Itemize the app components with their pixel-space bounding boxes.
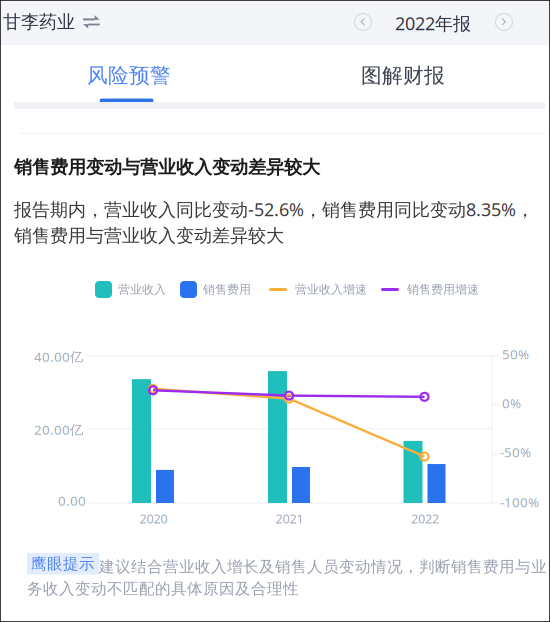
staticText: 务收入变动不匹配的具体原因及合理性	[27, 579, 299, 599]
staticText: 营业收入	[118, 282, 166, 297]
staticText: 2020	[139, 510, 167, 527]
staticText: 20.00亿	[34, 420, 83, 439]
staticText: 2021	[275, 510, 303, 527]
button[interactable]: 图解财报	[348, 62, 458, 102]
button[interactable]: 上一期	[350, 9, 376, 35]
staticText: 40.00亿	[34, 347, 83, 366]
staticText: 0%	[502, 394, 521, 412]
staticText: 报告期内，营业收入同比变动-52.6%，销售费用同比变动8.35%，销售费用与营…	[14, 197, 534, 247]
staticText: 风险预警	[87, 62, 171, 88]
staticText: 销售费用	[203, 282, 251, 297]
staticText: 图解财报	[361, 62, 445, 88]
staticText: 2022年报	[395, 11, 471, 35]
staticText: 销售费用变动与营业收入变动差异较大	[14, 156, 320, 179]
staticText: 2022	[411, 510, 439, 527]
button[interactable]: 下一期	[491, 9, 517, 35]
staticText: 营业收入增速	[295, 282, 367, 297]
staticText: -50%	[500, 443, 531, 461]
staticText: -100%	[500, 493, 539, 511]
button[interactable]: 风险预警	[74, 62, 184, 102]
staticText: 鹰眼提示	[31, 554, 95, 574]
staticText: 0.00	[58, 491, 86, 510]
staticText: 甘李药业	[3, 11, 75, 33]
staticText: 50%	[502, 345, 529, 363]
staticText: 建议结合营业收入增长及销售人员变动情况，判断销售费用与业	[99, 557, 547, 577]
staticText: 销售费用增速	[407, 282, 479, 297]
button[interactable]: 甘李药业	[3, 7, 107, 37]
